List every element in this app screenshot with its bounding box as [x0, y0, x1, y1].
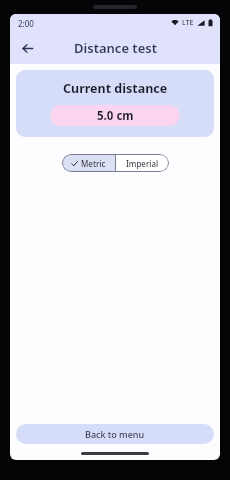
button[interactable]: Metric: [62, 154, 115, 172]
button[interactable]: Imperial: [116, 154, 169, 172]
staticText: LTE: [182, 18, 194, 28]
staticText: Distance test: [74, 39, 157, 57]
staticText: Back to menu: [85, 428, 145, 440]
staticText: Imperial: [126, 158, 159, 169]
button[interactable]: Back: [15, 36, 39, 60]
staticText: 2:00: [18, 18, 34, 29]
button[interactable]: Back to menu: [16, 424, 214, 444]
staticText: 5.0 cm: [97, 108, 134, 124]
staticText: Current distance: [63, 80, 168, 97]
staticText: Metric: [81, 158, 106, 169]
